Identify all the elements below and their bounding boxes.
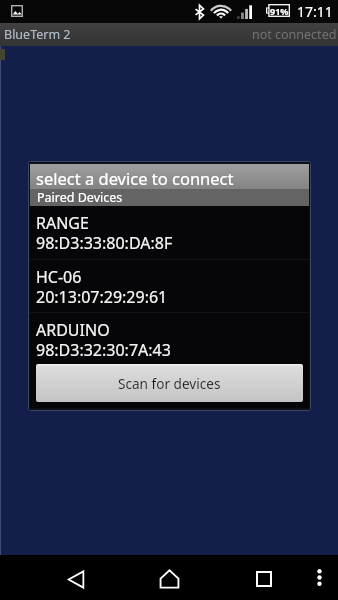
staticText: Scan for devices <box>118 374 221 393</box>
button[interactable]: Scan for devices <box>36 364 303 402</box>
staticText: Paired Devices <box>37 189 123 206</box>
button[interactable]: HC-06 <box>30 260 309 312</box>
staticText: RANGE <box>36 212 89 234</box>
button[interactable]: Home <box>146 555 194 600</box>
button[interactable]: Back <box>52 555 100 600</box>
staticText: BlueTerm 2 <box>4 26 71 43</box>
button[interactable]: RANGE <box>30 206 309 259</box>
button[interactable]: Recent apps <box>240 555 288 600</box>
staticText: 91% <box>270 5 289 17</box>
button[interactable]: ARDUINO <box>30 313 309 364</box>
button[interactable]: More options <box>304 555 338 600</box>
staticText: 98:D3:33:80:DA:8F <box>36 232 173 254</box>
staticText: not connected <box>252 26 337 43</box>
staticText: HC-06 <box>36 266 82 288</box>
staticText: 17:11 <box>297 2 333 21</box>
staticText: select a device to connect <box>36 167 234 189</box>
staticText: 20:13:07:29:29:61 <box>36 286 168 308</box>
staticText: ARDUINO <box>36 319 110 341</box>
staticText: 98:D3:32:30:7A:43 <box>36 339 171 361</box>
